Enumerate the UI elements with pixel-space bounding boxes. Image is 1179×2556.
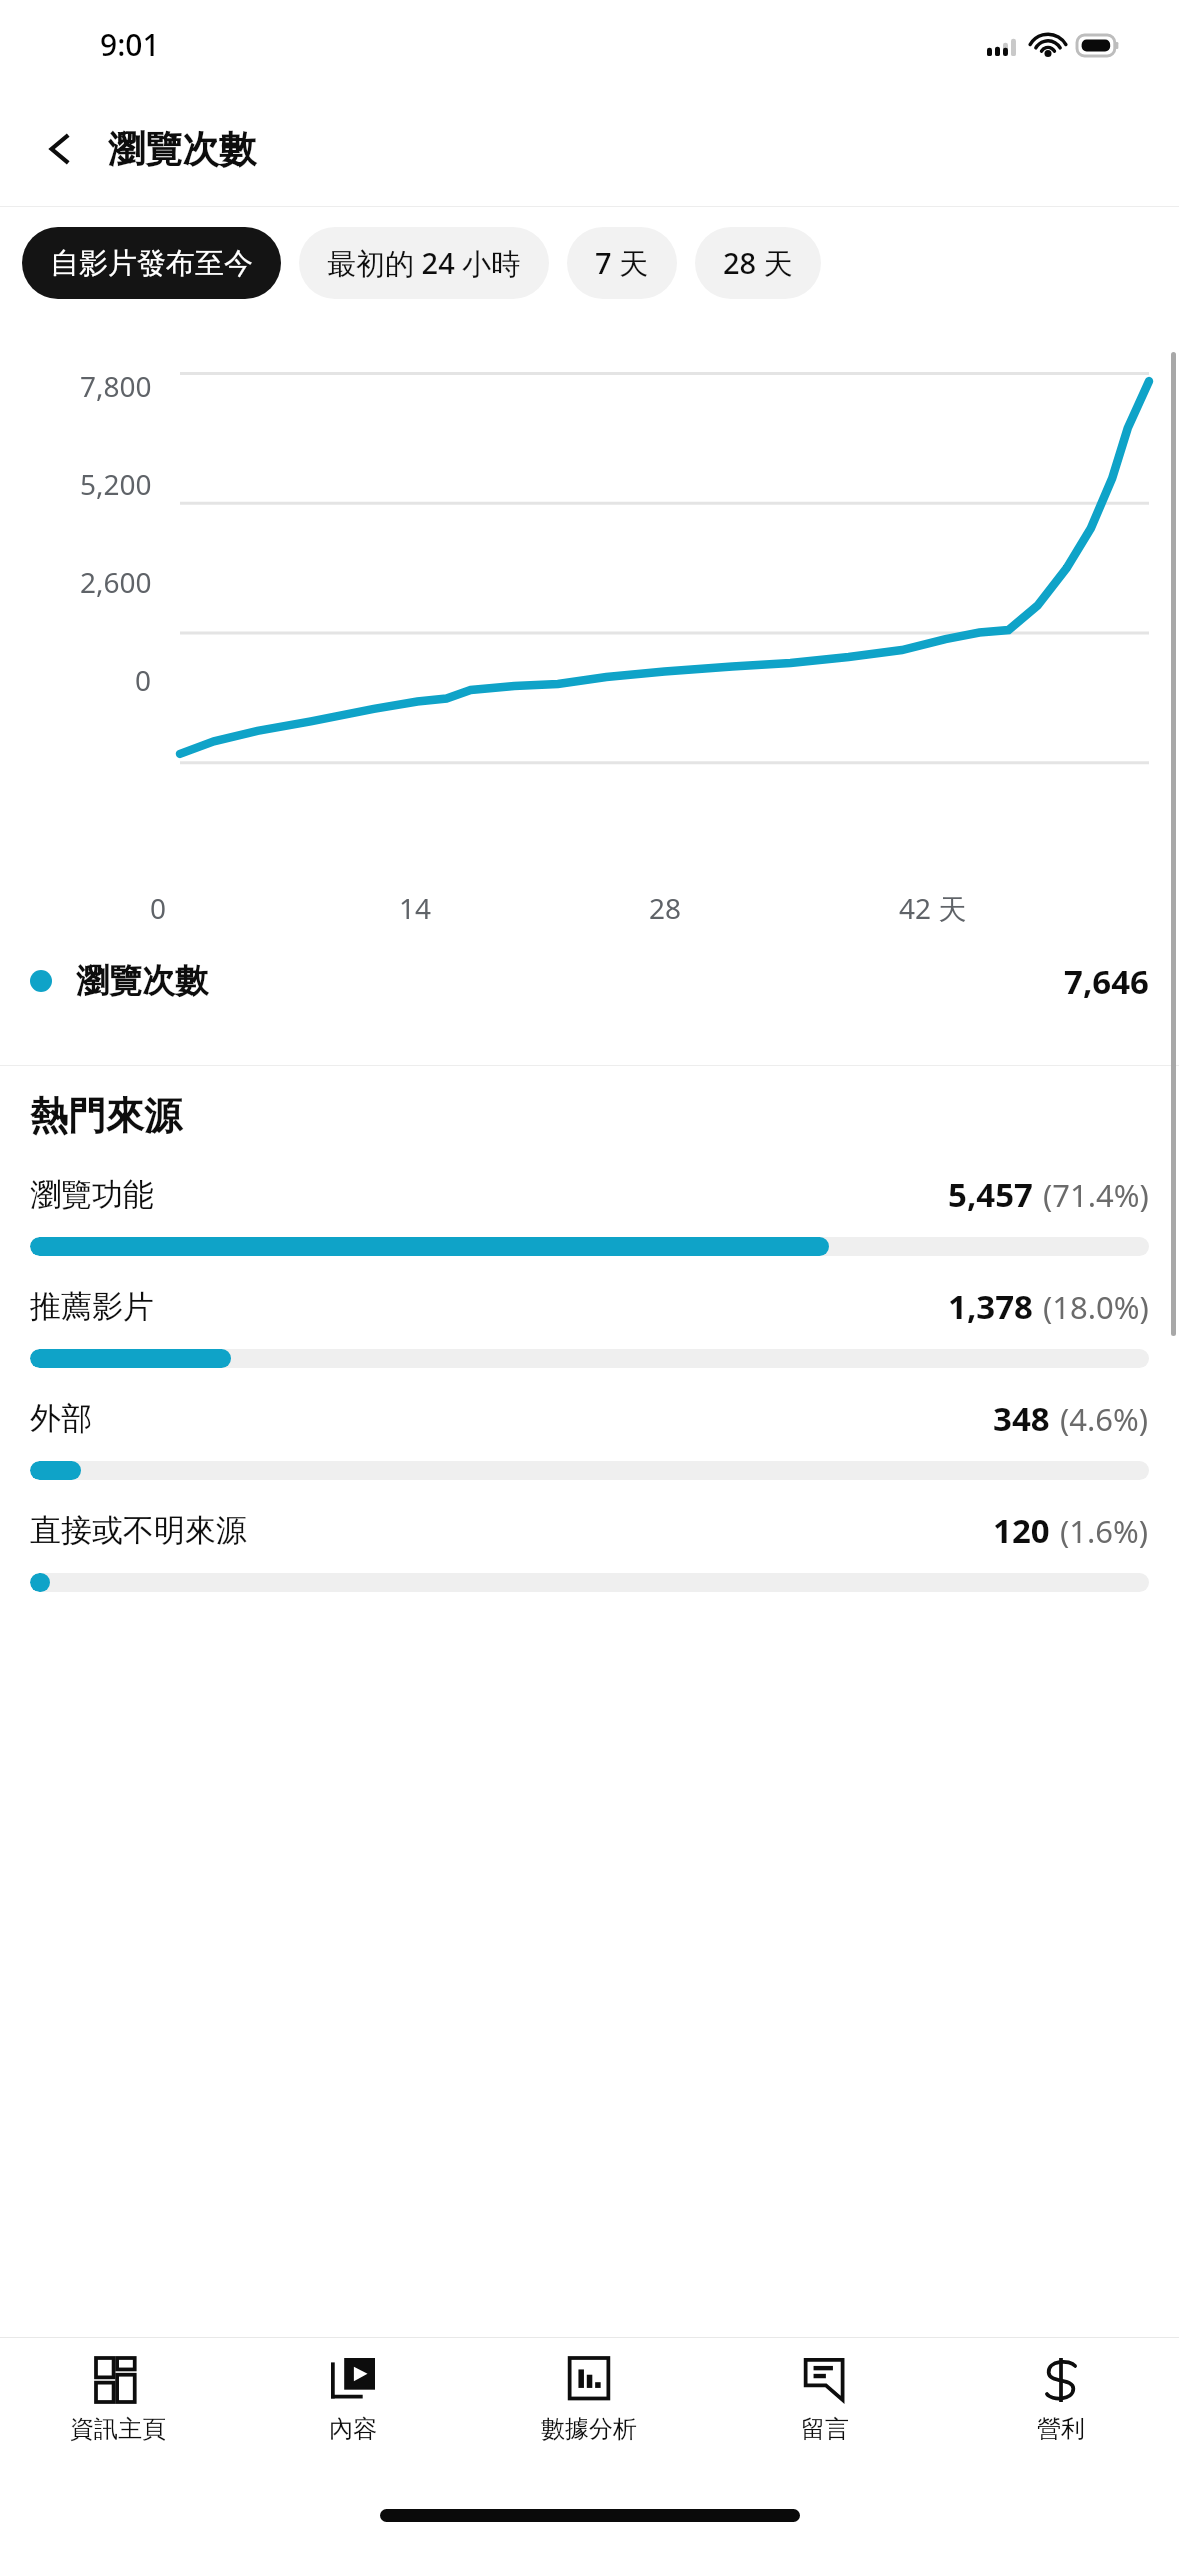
staticText: 數據分析 <box>541 2414 637 2444</box>
staticText: (18.0%) <box>1043 1286 1149 1328</box>
button[interactable]: 瀏覽功能 <box>0 1158 1179 1270</box>
staticText: 2,600 <box>80 563 152 601</box>
staticText: 最初的 24 小時 <box>327 243 521 283</box>
button[interactable]: 資訊主頁 <box>0 2338 235 2488</box>
staticText: 7,646 <box>1064 959 1149 1004</box>
button[interactable]: 自影片發布至今 <box>22 227 281 299</box>
staticText: 營利 <box>1037 2414 1085 2444</box>
staticText: 資訊主頁 <box>70 2414 166 2444</box>
button[interactable]: 營利 <box>943 2338 1179 2488</box>
staticText: 推薦影片 <box>30 1287 154 1326</box>
staticText: (71.4%) <box>1043 1174 1149 1216</box>
button[interactable]: 數據分析 <box>471 2338 707 2488</box>
staticText: 自影片發布至今 <box>50 245 253 282</box>
button[interactable]: 推薦影片 <box>0 1270 1179 1382</box>
button[interactable]: 直接或不明來源 <box>0 1494 1179 1606</box>
button[interactable]: 7 天 <box>567 227 677 299</box>
button[interactable]: 內容 <box>235 2338 471 2488</box>
button[interactable]: 外部 <box>0 1382 1179 1494</box>
staticText: 瀏覽次數 <box>108 126 256 173</box>
staticText: 348 <box>993 1396 1050 1441</box>
staticText: 內容 <box>329 2414 377 2444</box>
staticText: 28 天 <box>723 243 793 283</box>
staticText: 熱門來源 <box>30 1092 182 1140</box>
staticText: 留言 <box>801 2414 849 2444</box>
staticText: 42 天 <box>899 889 967 927</box>
staticText: 14 <box>399 889 432 927</box>
staticText: 1,378 <box>948 1284 1033 1329</box>
button[interactable]: 最初的 24 小時 <box>299 227 549 299</box>
button[interactable]: 28 天 <box>695 227 821 299</box>
staticText: 0 <box>135 661 152 699</box>
staticText: 9:01 <box>100 24 160 65</box>
staticText: 瀏覽次數 <box>76 960 208 1002</box>
staticText: 瀏覽功能 <box>30 1175 154 1214</box>
staticText: 120 <box>993 1508 1050 1553</box>
button[interactable]: 留言 <box>707 2338 943 2488</box>
staticText: 0 <box>150 889 167 927</box>
staticText: 直接或不明來源 <box>30 1511 247 1550</box>
staticText: (4.6%) <box>1060 1398 1149 1440</box>
staticText: 5,457 <box>948 1172 1033 1217</box>
staticText: 外部 <box>30 1399 92 1438</box>
staticText: 7,800 <box>80 367 152 405</box>
button[interactable]: 瀏覽次數 <box>30 931 1149 1031</box>
staticText: (1.6%) <box>1060 1510 1149 1552</box>
staticText: 28 <box>649 889 682 927</box>
staticText: 5,200 <box>80 465 152 503</box>
button[interactable]: 返回 <box>22 111 98 187</box>
staticText: 7 天 <box>595 243 649 283</box>
